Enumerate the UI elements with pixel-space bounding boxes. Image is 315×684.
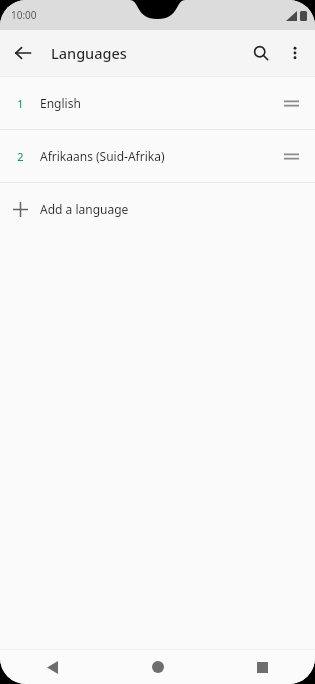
button[interactable]: 1: [0, 77, 315, 129]
staticText: 2: [17, 149, 24, 164]
staticText: Languages: [51, 43, 127, 63]
button[interactable]: Add a language: [0, 183, 315, 235]
staticText: 10:00: [11, 8, 37, 22]
button[interactable]: More options: [278, 36, 312, 70]
button[interactable]: Back: [6, 36, 40, 70]
button[interactable]: Reorder Afrikaans (Suid-Afrika): [271, 136, 311, 176]
staticText: Add a language: [40, 201, 129, 217]
staticText: 1: [17, 96, 24, 111]
button[interactable]: Search: [244, 36, 278, 70]
staticText: Afrikaans (Suid-Afrika): [40, 148, 271, 164]
button[interactable]: Reorder English: [271, 83, 311, 123]
button[interactable]: Recent apps: [210, 650, 315, 684]
button[interactable]: Home: [105, 650, 210, 684]
button[interactable]: Back: [0, 650, 105, 684]
button[interactable]: 2: [0, 130, 315, 182]
staticText: English: [40, 95, 271, 111]
